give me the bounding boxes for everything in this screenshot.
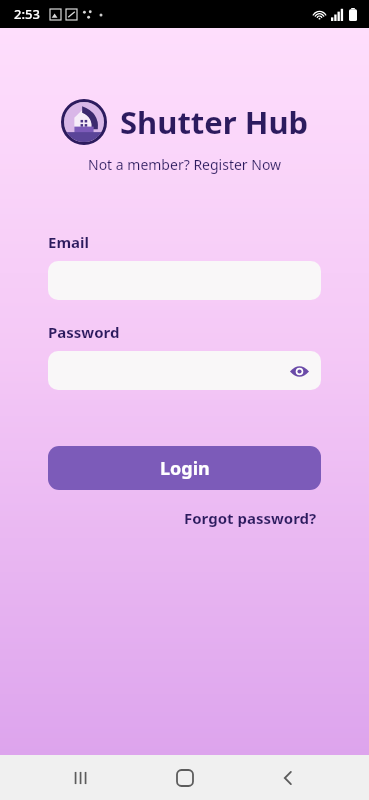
staticText: Password xyxy=(48,322,120,342)
button[interactable]: Not a member? Register Now xyxy=(82,153,288,176)
button[interactable]: Recent apps xyxy=(58,755,104,800)
button[interactable]: Back xyxy=(265,755,311,800)
staticText: Login xyxy=(160,456,210,481)
button[interactable]: Forgot password? xyxy=(180,505,321,531)
button[interactable]: Login xyxy=(48,446,321,490)
button[interactable]: Show password xyxy=(48,351,321,390)
staticText: Shutter Hub xyxy=(120,101,309,143)
button[interactable]: Show password xyxy=(287,359,311,383)
button[interactable] xyxy=(48,261,321,300)
staticText: 2:53 xyxy=(14,5,40,23)
staticText: Email xyxy=(48,232,89,252)
button[interactable]: Home xyxy=(162,755,208,800)
